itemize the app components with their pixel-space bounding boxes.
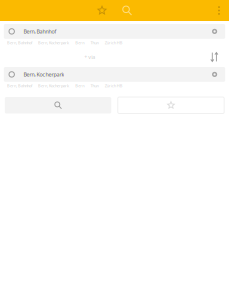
staticText: + via <box>84 53 95 61</box>
button[interactable]: Zürich HB <box>102 82 126 89</box>
staticText: Thun <box>90 83 98 88</box>
button[interactable]: Thun <box>87 39 102 46</box>
staticText: Zürich HB <box>105 40 123 45</box>
button[interactable]: Save favourite <box>118 97 224 113</box>
staticText: Bern <box>75 40 84 45</box>
button[interactable]: Bern, Kocherpark <box>35 82 72 89</box>
button[interactable]: Zürich HB <box>102 39 126 46</box>
staticText: Zürich HB <box>105 83 123 88</box>
button[interactable]: Bern <box>72 82 87 89</box>
button[interactable]: Search <box>116 0 138 21</box>
button[interactable]: Bern, Bahnhof <box>4 39 35 46</box>
staticText: Bern <box>75 83 84 88</box>
staticText: Bern, Bahnhof <box>7 40 32 45</box>
button[interactable]: Favourites <box>91 0 113 21</box>
button[interactable]: + via <box>82 51 97 63</box>
button[interactable]: More <box>210 0 227 21</box>
button[interactable]: Bern, Kocherpark <box>35 39 72 46</box>
button[interactable]: Swap stations <box>210 52 218 62</box>
button[interactable]: Search connections <box>5 97 111 113</box>
button[interactable]: Bern, Bahnhof <box>4 82 35 89</box>
staticText: Thun <box>90 40 98 45</box>
staticText: Bern, Kocherpark <box>23 71 64 78</box>
staticText: Bern, Bahnhof <box>7 83 32 88</box>
button[interactable]: Bern <box>72 39 87 46</box>
button[interactable]: Bern, Bahnhof <box>4 24 225 39</box>
button[interactable]: Bern, Kocherpark <box>4 67 225 82</box>
button[interactable]: Thun <box>87 82 102 89</box>
staticText: Bern, Kocherpark <box>38 83 69 88</box>
staticText: Bern, Bahnhof <box>23 28 56 35</box>
staticText: Bern, Kocherpark <box>38 40 69 45</box>
